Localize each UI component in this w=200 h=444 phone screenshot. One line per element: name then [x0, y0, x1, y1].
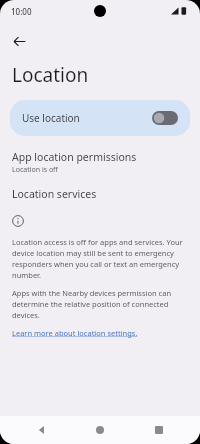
staticText: Location access is off for apps and serv… — [12, 237, 188, 280]
button[interactable]: Location services — [0, 187, 200, 201]
button[interactable]: Learn more about location settings. — [12, 328, 138, 338]
staticText: Apps with the Nearby devices permission … — [12, 288, 188, 320]
button[interactable]: Use location — [10, 100, 190, 136]
button[interactable]: Home — [83, 416, 117, 444]
staticText: Location — [12, 62, 89, 88]
button[interactable]: Back — [25, 416, 59, 444]
button[interactable]: Back — [6, 28, 32, 54]
staticText: App location permissions — [12, 150, 137, 164]
button[interactable]: Recents — [142, 416, 176, 444]
button[interactable]: App location permissions — [0, 150, 200, 175]
staticText: Use location — [22, 111, 80, 125]
staticText: Location services — [12, 187, 97, 201]
staticText: Location is off — [12, 165, 58, 175]
staticText: 10:00 — [11, 6, 32, 17]
staticText: Learn more about location settings. — [12, 328, 138, 338]
